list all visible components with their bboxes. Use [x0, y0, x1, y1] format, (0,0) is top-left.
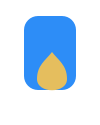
- button[interactable]: Open: [24, 16, 76, 90]
